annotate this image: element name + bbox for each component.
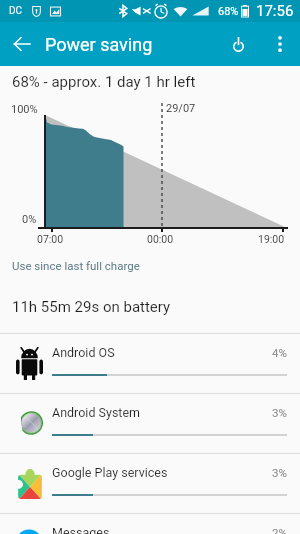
staticText: Messages: [52, 525, 110, 534]
staticText: Use since last full charge: [12, 259, 140, 272]
staticText: 17:56: [256, 2, 294, 20]
button[interactable]: Refresh: [216, 22, 260, 66]
button[interactable]: Navigate up: [0, 22, 44, 66]
button[interactable]: Android System: [0, 394, 300, 453]
staticText: 100%: [11, 103, 38, 116]
staticText: Android OS: [52, 345, 115, 360]
staticText: 2%: [272, 526, 287, 534]
staticText: 4%: [272, 346, 287, 359]
staticText: 3%: [272, 406, 287, 419]
staticText: Power saving: [45, 34, 153, 55]
button[interactable]: Use since last full charge: [12, 259, 140, 272]
staticText: DC: [9, 5, 23, 17]
staticText: 29/07: [166, 102, 196, 115]
staticText: 00:00: [147, 233, 174, 245]
button[interactable]: Messages: [0, 514, 300, 534]
staticText: 68%: [218, 5, 239, 18]
button[interactable]: Android OS: [0, 334, 300, 393]
staticText: 07:00: [37, 233, 64, 245]
staticText: 0%: [22, 213, 37, 226]
button[interactable]: More options: [260, 24, 300, 64]
staticText: 68% - approx. 1 day 1 hr left: [12, 73, 196, 91]
button[interactable]: Google Play services: [0, 454, 300, 513]
staticText: Google Play services: [52, 465, 168, 480]
staticText: 3%: [272, 466, 287, 479]
staticText: Android System: [52, 405, 141, 420]
staticText: 11h 55m 29s on battery: [12, 298, 171, 316]
staticText: 19:00: [258, 233, 285, 245]
